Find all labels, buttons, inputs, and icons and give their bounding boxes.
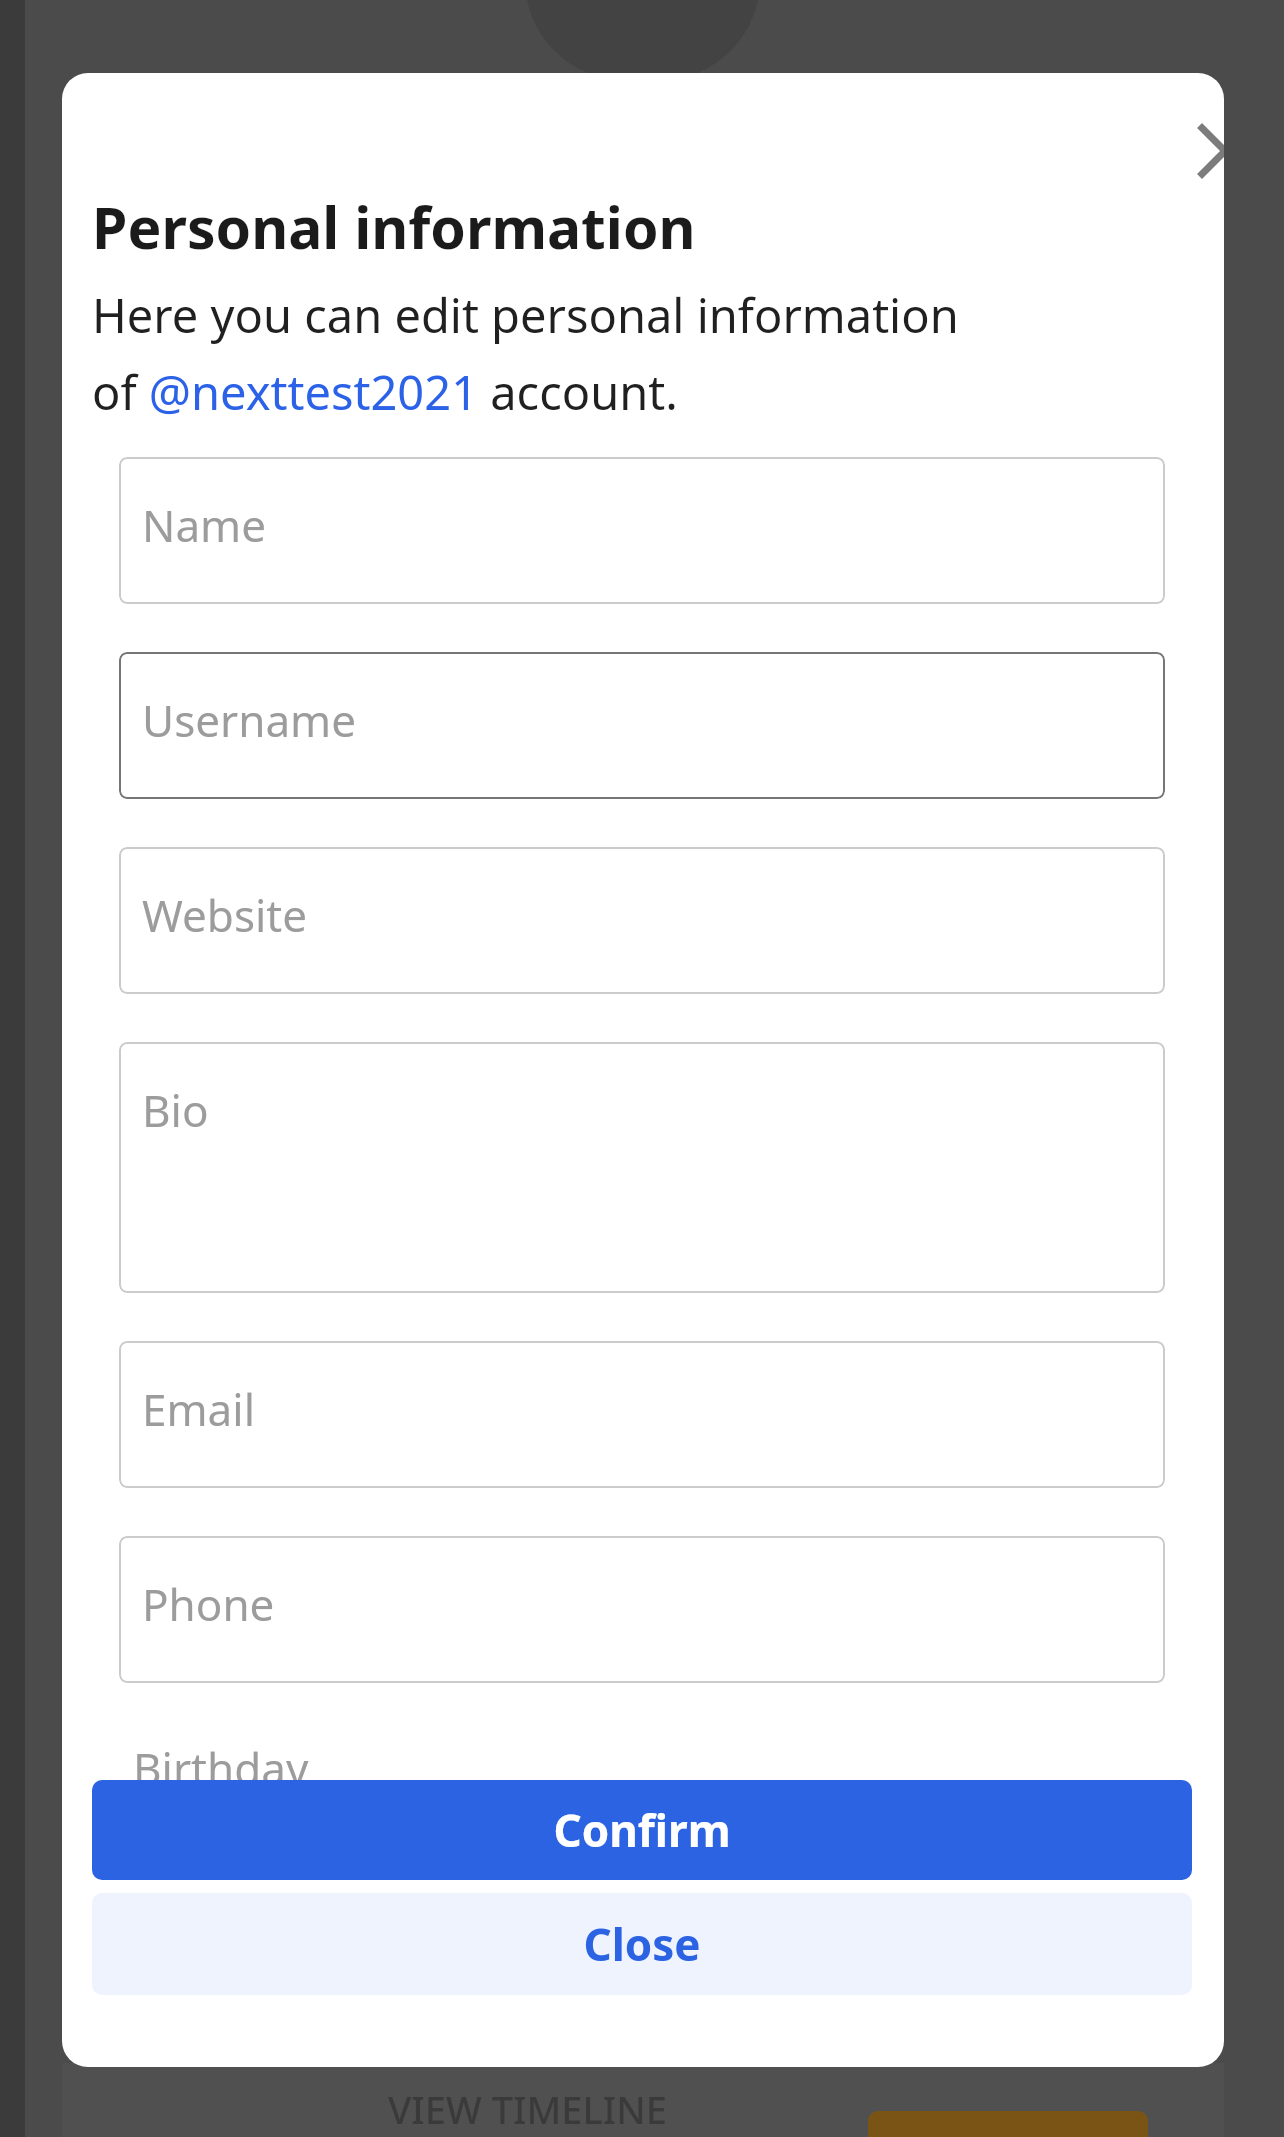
button[interactable]: Confirm bbox=[92, 1780, 1192, 1880]
staticText: Bio bbox=[142, 1080, 209, 1140]
staticText: Website bbox=[142, 885, 308, 945]
button[interactable]: Birthday bbox=[119, 1736, 1165, 1783]
button[interactable]: Phone bbox=[119, 1536, 1165, 1683]
staticText: Here you can edit personal information o… bbox=[92, 283, 972, 423]
button[interactable]: Website bbox=[119, 847, 1165, 994]
button[interactable]: Username bbox=[119, 652, 1165, 799]
staticText: Birthday bbox=[133, 1738, 309, 1785]
staticText: Phone bbox=[142, 1574, 275, 1634]
staticText: VIEW TIMELINE bbox=[388, 2083, 667, 2135]
staticText: Close bbox=[583, 1914, 701, 1974]
staticText: Confirm bbox=[553, 1800, 731, 1860]
button[interactable]: Close dialog bbox=[1167, 93, 1224, 209]
staticText: Name bbox=[142, 495, 267, 555]
staticText: Personal information bbox=[92, 188, 696, 266]
button[interactable]: Email bbox=[119, 1341, 1165, 1488]
staticText: Username bbox=[142, 690, 357, 750]
button[interactable]: Close bbox=[92, 1893, 1192, 1995]
button[interactable]: Bio bbox=[119, 1042, 1165, 1293]
button[interactable]: Name bbox=[119, 457, 1165, 604]
staticText: Email bbox=[142, 1379, 255, 1439]
